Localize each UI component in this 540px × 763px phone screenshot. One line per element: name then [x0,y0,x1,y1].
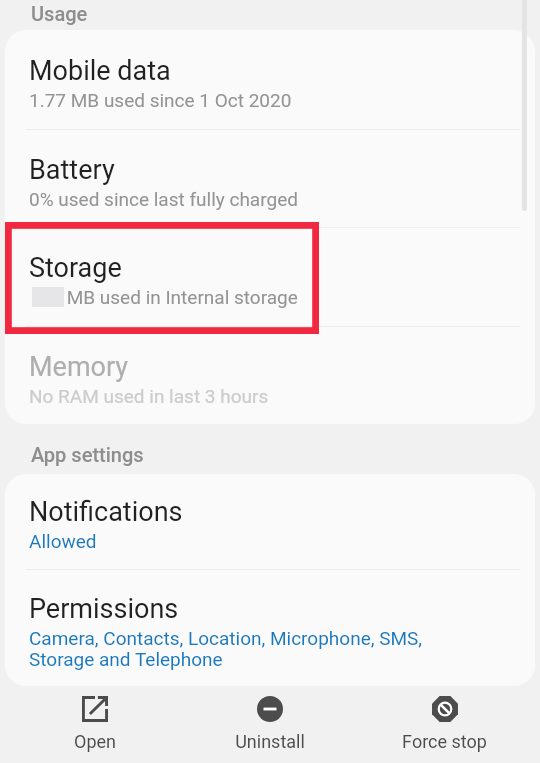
staticText: Force stop [402,731,487,752]
staticText: Memory [29,351,129,383]
button[interactable]: Uninstall [182,686,357,763]
staticText: No RAM used in last 3 hours [29,385,269,407]
staticText: App settings [31,443,144,466]
staticText: 1.77 MB used since 1 Oct 2020 [29,89,292,111]
button[interactable]: Mobile data [5,30,535,129]
other: Uninstall [257,696,283,722]
staticText: Open [74,731,116,752]
staticText: Camera, Contacts, Location, Microphone, … [29,627,423,671]
button[interactable]: Open [8,686,182,763]
staticText: Mobile data [29,55,171,87]
staticText: Allowed [29,530,97,552]
staticText: Uninstall [235,731,305,752]
staticText: Permissions [29,593,179,625]
staticText: Notifications [29,496,183,528]
other: Force stop [432,696,458,722]
staticText: MB used in Internal storage [29,286,298,308]
button[interactable]: Memory [5,326,535,424]
button[interactable]: Force stop [357,686,532,763]
staticText: 0% used since last fully charged [29,188,298,210]
button[interactable]: Notifications [5,474,535,569]
button[interactable]: Permissions [5,569,535,686]
button[interactable]: Storage [5,227,535,326]
other: Open [82,696,108,722]
staticText: Battery [29,154,115,186]
button[interactable]: Battery [5,129,535,228]
staticText: Storage [29,252,122,284]
staticText: Usage [31,2,88,25]
